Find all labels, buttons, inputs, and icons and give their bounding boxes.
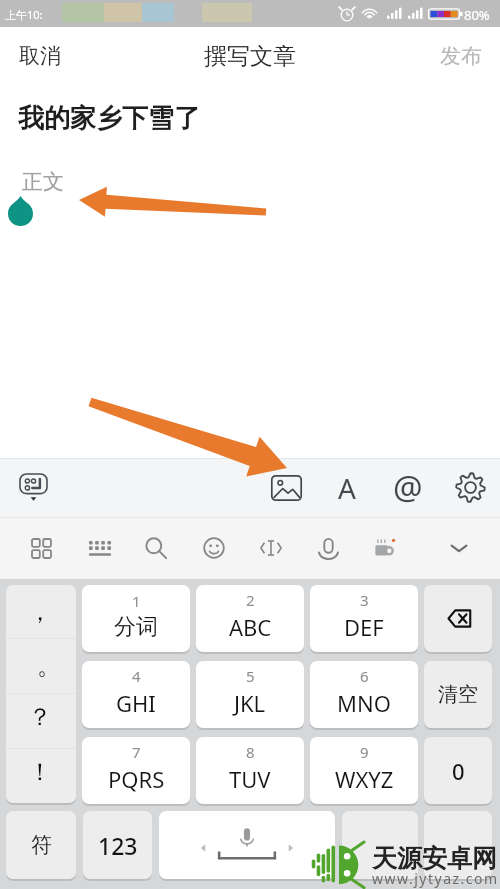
button[interactable]: 符 bbox=[6, 811, 76, 879]
staticText: GHI bbox=[116, 688, 156, 718]
staticText: MNO bbox=[337, 688, 391, 718]
button[interactable]: 4 bbox=[82, 661, 190, 728]
staticText: @ bbox=[393, 465, 423, 510]
button[interactable]: Enter bbox=[342, 811, 418, 879]
button[interactable]: ， bbox=[6, 585, 76, 638]
staticText: 清空 bbox=[438, 682, 478, 707]
staticText: 6 bbox=[360, 666, 369, 686]
staticText: 80% bbox=[464, 6, 490, 24]
button[interactable]: 清空 bbox=[424, 661, 492, 728]
staticText: PQRS bbox=[108, 764, 165, 794]
button[interactable]: Mention bbox=[386, 458, 430, 517]
staticText: ？ bbox=[28, 702, 52, 732]
staticText: 4 bbox=[132, 666, 141, 686]
staticText: ！ bbox=[28, 757, 52, 787]
button[interactable]: 2 bbox=[196, 585, 304, 652]
button[interactable]: 1 bbox=[82, 585, 190, 652]
button[interactable]: 9 bbox=[310, 737, 418, 804]
staticText: 0 bbox=[452, 756, 465, 786]
staticText: 1 bbox=[132, 591, 141, 611]
staticText: 123 bbox=[98, 830, 138, 861]
staticText: 我的家乡下雪了 bbox=[18, 102, 200, 135]
button[interactable]: Emoji bbox=[194, 517, 234, 579]
staticText: 。 bbox=[37, 651, 61, 681]
button[interactable]: Hide keyboard bbox=[439, 517, 479, 579]
staticText: 上午10: bbox=[5, 7, 43, 22]
staticText: 9 bbox=[360, 742, 369, 762]
button[interactable]: Emoji keyboard bbox=[12, 458, 54, 517]
staticText: 5 bbox=[246, 666, 255, 686]
button[interactable]: More bbox=[424, 811, 492, 879]
button[interactable]: Apps bbox=[21, 517, 61, 579]
staticText: 分词 bbox=[114, 613, 158, 641]
staticText: ABC bbox=[229, 612, 272, 642]
button[interactable]: Search bbox=[136, 517, 176, 579]
staticText: JKL bbox=[234, 688, 266, 718]
button[interactable]: 。 bbox=[6, 639, 76, 693]
button[interactable]: Insert image bbox=[264, 458, 308, 517]
button[interactable]: Edit cursor bbox=[251, 517, 291, 579]
staticText: 发布 bbox=[440, 43, 482, 69]
button[interactable]: 5 bbox=[196, 661, 304, 728]
staticText: 符 bbox=[31, 832, 52, 858]
staticText: www.jytyaz.com bbox=[372, 869, 499, 888]
button[interactable]: 0 bbox=[424, 737, 492, 804]
button[interactable]: Text style bbox=[325, 458, 369, 517]
staticText: 7 bbox=[132, 742, 141, 762]
staticText: 2 bbox=[246, 590, 255, 610]
staticText: DEF bbox=[344, 612, 384, 642]
button[interactable]: 7 bbox=[82, 737, 190, 804]
button[interactable]: ？ bbox=[6, 694, 76, 748]
staticText: A bbox=[338, 469, 356, 507]
staticText: 3 bbox=[360, 590, 369, 610]
staticText: 撰写文章 bbox=[204, 42, 296, 71]
button[interactable]: 取消 bbox=[0, 27, 80, 85]
button[interactable]: 6 bbox=[310, 661, 418, 728]
button[interactable]: Voice input bbox=[308, 517, 348, 579]
button[interactable]: Space bbox=[159, 811, 335, 879]
staticText: 8 bbox=[246, 742, 255, 762]
staticText: 天源安卓网 bbox=[372, 843, 497, 874]
button[interactable]: ！ bbox=[6, 749, 76, 803]
staticText: TUV bbox=[229, 764, 271, 794]
staticText: ， bbox=[28, 597, 52, 627]
button[interactable]: 123 bbox=[83, 811, 152, 879]
button[interactable]: 8 bbox=[196, 737, 304, 804]
button[interactable]: 3 bbox=[310, 585, 418, 652]
staticText: 取消 bbox=[19, 43, 61, 69]
button[interactable]: 发布 bbox=[422, 27, 500, 85]
staticText: 正文 bbox=[22, 169, 64, 195]
button[interactable]: Themes bbox=[365, 517, 405, 579]
button[interactable]: Backspace bbox=[424, 585, 492, 652]
button[interactable]: Keyboard layout bbox=[80, 517, 120, 579]
staticText: WXYZ bbox=[335, 764, 394, 794]
button[interactable]: Settings bbox=[448, 458, 492, 517]
